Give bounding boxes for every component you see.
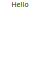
staticText: Hello <box>11 0 28 9</box>
